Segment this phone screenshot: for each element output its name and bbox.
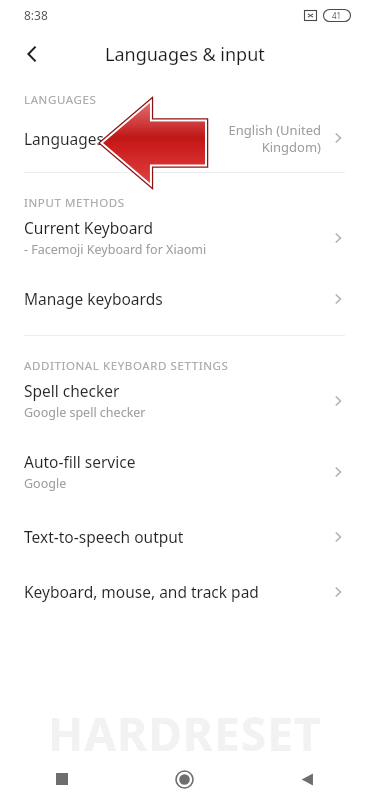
staticText: Text-to-speech output [24, 526, 331, 547]
staticText: ADDITIONAL KEYBOARD SETTINGS [24, 358, 229, 374]
button[interactable]: Back [246, 758, 369, 800]
button[interactable]: Auto-fill service [0, 447, 369, 496]
staticText: INPUT METHODS [24, 195, 125, 211]
staticText: Google spell checker [24, 404, 146, 421]
button[interactable]: Spell checker [0, 376, 369, 425]
button[interactable]: Keyboard, mouse, and track pad [0, 577, 369, 606]
button[interactable]: Back [12, 34, 52, 74]
staticText: INFO [302, 754, 355, 780]
button[interactable]: Manage keyboards [0, 284, 369, 313]
staticText: Google [24, 475, 67, 492]
staticText: - Facemoji Keyboard for Xiaomi [24, 241, 207, 258]
staticText: HARDRESET [48, 702, 322, 762]
button[interactable]: Languages [0, 110, 369, 166]
staticText: 41 [332, 10, 342, 21]
staticText: Languages [24, 128, 104, 149]
staticText: Current Keyboard [24, 217, 153, 238]
staticText: Auto-fill service [24, 451, 136, 472]
button[interactable]: Current Keyboard [0, 213, 369, 262]
staticText: Spell checker [24, 380, 120, 401]
staticText: English (United Kingdom) [228, 121, 321, 156]
other: Annotation arrow pointing to Languages [103, 103, 205, 183]
staticText: Keyboard, mouse, and track pad [24, 581, 331, 602]
staticText: Manage keyboards [24, 288, 331, 309]
staticText: LANGUAGES [24, 92, 97, 108]
staticText: 8:38 [24, 7, 48, 23]
button[interactable]: Text-to-speech output [0, 522, 369, 551]
button[interactable]: Recent apps [0, 758, 123, 800]
button[interactable]: Home [123, 758, 246, 800]
staticText: Languages & input [105, 42, 265, 67]
